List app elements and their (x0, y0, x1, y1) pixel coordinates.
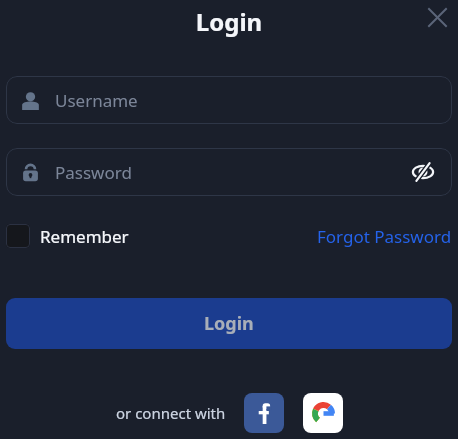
staticText: Login (0, 5, 458, 38)
button[interactable]: Close (420, 0, 454, 34)
button[interactable]: Password (6, 148, 452, 196)
button[interactable]: Forgot Password (317, 225, 452, 248)
button[interactable]: Sign in with Facebook (244, 393, 284, 433)
button[interactable]: Toggle password visibility (409, 158, 437, 186)
staticText: or connect with (116, 403, 226, 423)
button[interactable]: Login (6, 298, 452, 349)
staticText: Password (55, 161, 132, 184)
button[interactable]: Remember (6, 224, 129, 248)
button[interactable]: Username (6, 76, 452, 124)
staticText: Username (55, 89, 138, 112)
staticText: Remember (40, 225, 129, 248)
staticText: Login (204, 311, 254, 336)
button[interactable]: Sign in with Google (303, 393, 343, 433)
staticText: Forgot Password (317, 225, 452, 248)
